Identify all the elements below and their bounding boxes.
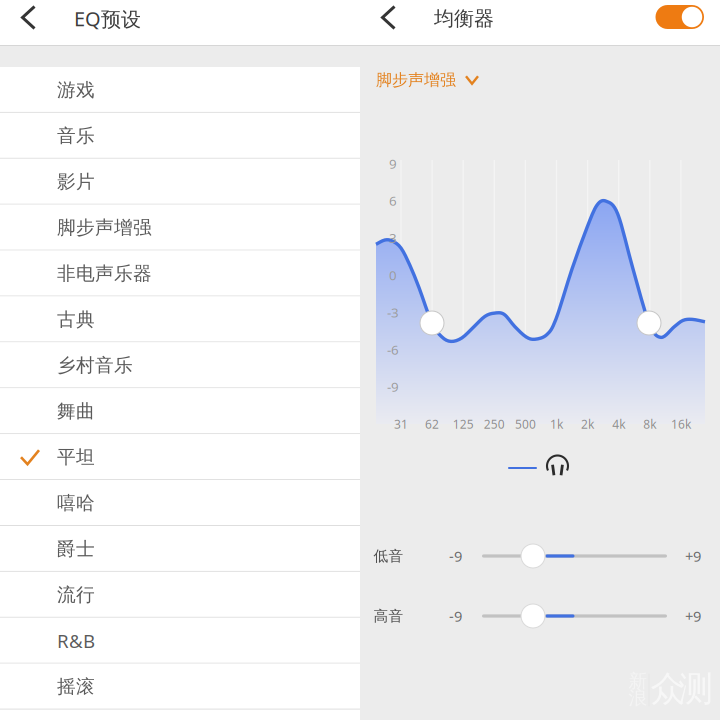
button[interactable]: 乡村音乐 (0, 342, 360, 388)
button[interactable]: Back (360, 0, 417, 45)
staticText: 16k (671, 416, 691, 432)
button[interactable]: 影片 (0, 159, 360, 205)
staticText: 1k (550, 416, 563, 432)
button[interactable]: R&B (0, 618, 360, 664)
staticText: 4k (612, 416, 625, 432)
button[interactable]: 游戏 (0, 67, 360, 113)
staticText: -9 (449, 606, 462, 626)
staticText: 众 (650, 668, 685, 710)
staticText: 平坦 (57, 446, 95, 469)
staticText: 流行 (57, 583, 95, 606)
button[interactable]: Equalizer enabled (655, 0, 720, 45)
button[interactable]: 非电声乐器 (0, 251, 360, 296)
staticText: 脚步声增强 (57, 216, 152, 239)
staticText: 0 (389, 266, 397, 284)
button[interactable]: 平坦 (0, 434, 360, 480)
staticText: 古典 (57, 308, 95, 331)
staticText: 250 (484, 416, 505, 432)
staticText: EQ预设 (74, 5, 141, 32)
staticText: 舞曲 (57, 400, 95, 423)
button[interactable]: 音乐 (0, 113, 360, 159)
button[interactable]: 摇滚 (0, 664, 360, 710)
button[interactable]: 脚步声增强 (0, 205, 360, 251)
staticText: 摇滚 (57, 675, 95, 698)
staticText: 9 (389, 155, 397, 172)
button[interactable]: 舞曲 (0, 388, 360, 434)
staticText: 高音 (373, 607, 403, 625)
staticText: 8k (643, 416, 656, 432)
staticText: 嘻哈 (57, 492, 95, 514)
staticText: +9 (685, 546, 701, 566)
button[interactable]: 古典 (0, 296, 360, 342)
staticText: +9 (685, 606, 701, 626)
button[interactable]: 低音 level (521, 544, 545, 568)
staticText: 31 (394, 416, 408, 432)
staticText: R&B (57, 628, 95, 653)
staticText: 非电声乐器 (57, 262, 152, 285)
button[interactable]: 高音 level (521, 604, 545, 628)
staticText: 3 (389, 229, 397, 247)
staticText: 影片 (57, 170, 95, 193)
staticText: 测 (678, 668, 713, 710)
staticText: 125 (453, 416, 474, 432)
staticText: 均衡器 (434, 6, 494, 31)
staticText: 6 (389, 192, 397, 209)
staticText: 2k (581, 416, 594, 432)
staticText: 低音 (373, 547, 403, 565)
staticText: 乡村音乐 (57, 354, 133, 377)
staticText: 音乐 (57, 124, 95, 147)
button[interactable]: Back (0, 0, 57, 45)
staticText: -3 (387, 303, 399, 321)
button[interactable]: 流行 (0, 572, 360, 618)
button[interactable]: 脚步声增强 (360, 61, 492, 99)
staticText: -6 (387, 341, 399, 358)
button[interactable]: 爵士 (0, 526, 360, 572)
staticText: -9 (387, 378, 399, 395)
staticText: 500 (515, 416, 536, 432)
staticText: 脚步声增强 (376, 70, 456, 90)
staticText: 62 (425, 416, 439, 432)
button[interactable]: 嘻哈 (0, 480, 360, 526)
staticText: 游戏 (57, 78, 95, 101)
staticText: 爵士 (57, 537, 95, 560)
staticText: -9 (449, 546, 462, 566)
